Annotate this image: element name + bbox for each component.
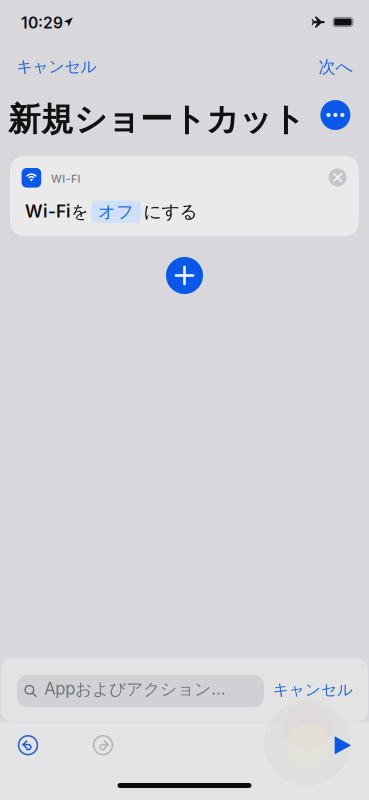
button[interactable]: WI-FI xyxy=(10,156,359,236)
staticText: 次へ xyxy=(318,56,353,78)
staticText: にする xyxy=(143,200,197,223)
staticText: キャンセル xyxy=(16,57,96,77)
staticText: キャンセル xyxy=(273,680,353,700)
staticText: Appおよびアクション… xyxy=(44,679,225,700)
button[interactable]: Redo xyxy=(84,726,122,764)
button[interactable]: More options xyxy=(320,100,350,130)
button[interactable]: Appおよびアクション… xyxy=(17,675,264,707)
button[interactable]: キャンセル xyxy=(0,48,112,86)
button[interactable]: Remove action xyxy=(329,168,347,186)
button[interactable]: キャンセル xyxy=(264,671,362,709)
staticText: WI-FI xyxy=(51,172,80,185)
button[interactable]: Run shortcut xyxy=(325,727,360,764)
staticText: オフ xyxy=(98,201,134,223)
button[interactable]: Add action xyxy=(166,257,203,294)
staticText: 10:29 xyxy=(21,13,63,32)
button[interactable]: 次へ xyxy=(302,47,369,87)
staticText: 新規ショートカット xyxy=(8,99,305,140)
staticText: Wi-Fiを xyxy=(25,201,89,223)
button[interactable]: Undo xyxy=(9,726,47,764)
